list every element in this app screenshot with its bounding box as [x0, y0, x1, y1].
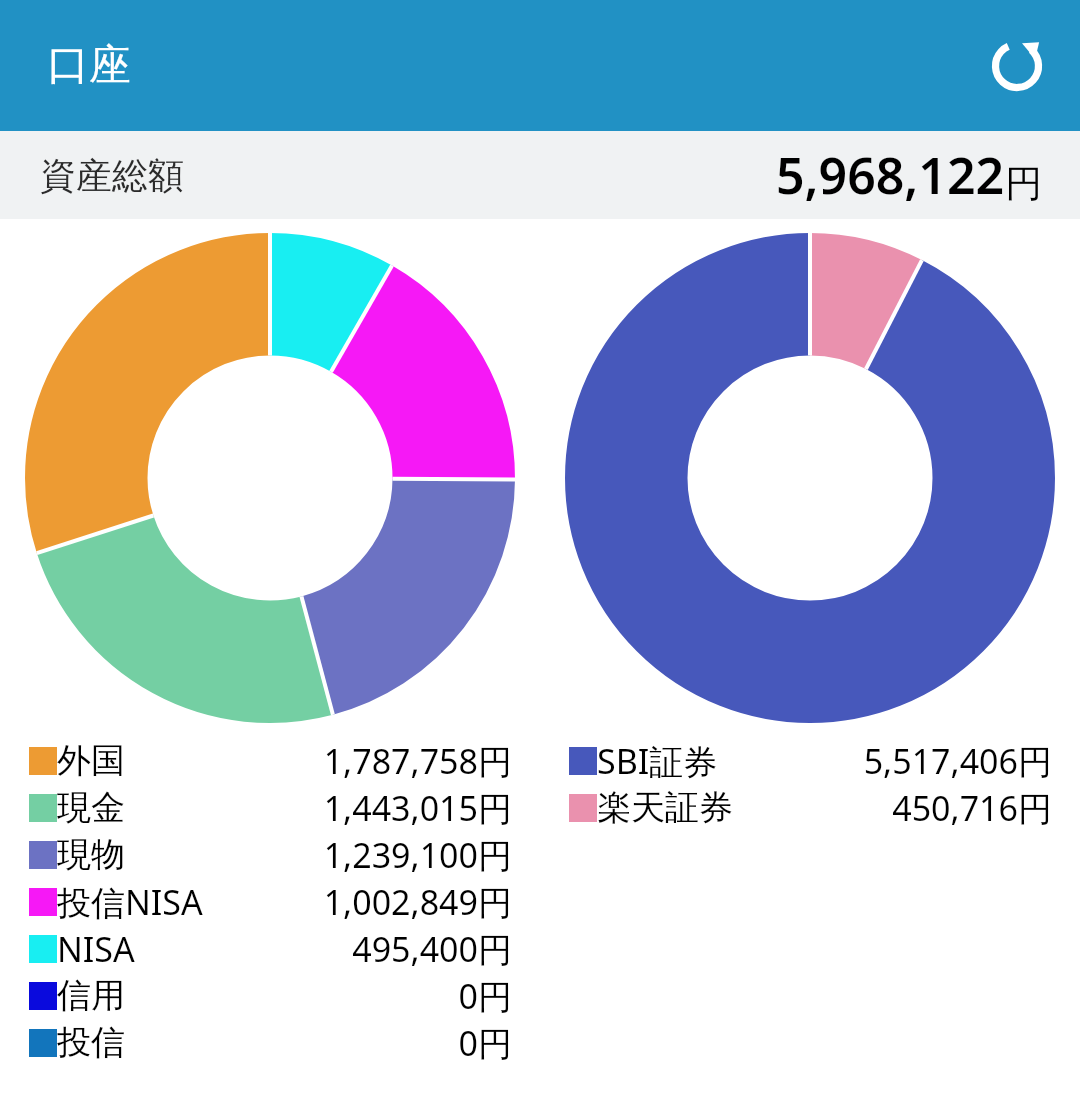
button[interactable]: 投信NISA	[0, 878, 540, 925]
staticText: 450,716円	[892, 785, 1052, 831]
button[interactable]: 楽天証券	[540, 784, 1080, 831]
button[interactable]: Refresh	[978, 27, 1056, 105]
staticText: 口座	[47, 39, 131, 92]
button[interactable]: 信用	[0, 972, 540, 1019]
staticText: 1,239,100円	[323, 832, 512, 878]
staticText: 1,443,015円	[323, 785, 512, 831]
button[interactable]: 投信	[0, 1019, 540, 1066]
staticText: 0円	[458, 1020, 512, 1066]
button[interactable]: 外国	[0, 737, 540, 784]
staticText: 投信	[57, 1021, 125, 1064]
staticText: 現物	[57, 833, 125, 876]
button[interactable]: 現金	[0, 784, 540, 831]
staticText: 1,787,758円	[323, 738, 512, 784]
staticText: 495,400円	[352, 926, 512, 972]
button[interactable]: NISA	[0, 925, 540, 972]
staticText: 5,517,406円	[863, 738, 1052, 784]
staticText: SBI証券	[597, 738, 718, 784]
button[interactable]: SBI証券	[540, 737, 1080, 784]
staticText: 資産総額	[40, 153, 184, 198]
staticText: 現金	[57, 786, 125, 829]
staticText: 5,968,122	[776, 141, 1005, 209]
staticText: 投信NISA	[57, 879, 203, 925]
staticText: 0円	[458, 973, 512, 1019]
staticText: 1,002,849円	[323, 879, 512, 925]
staticText: 楽天証券	[597, 786, 733, 829]
staticText: 信用	[57, 974, 125, 1017]
staticText: 外国	[57, 739, 125, 782]
staticText: NISA	[57, 926, 135, 972]
button[interactable]: 現物	[0, 831, 540, 878]
staticText: 円	[1005, 160, 1042, 207]
